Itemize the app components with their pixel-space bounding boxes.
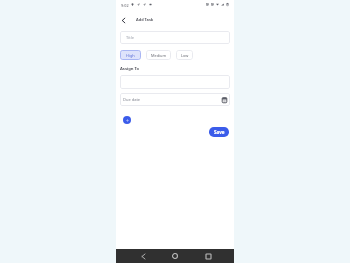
button[interactable]: Medium: [146, 50, 171, 60]
staticText: Assign To: [120, 66, 140, 72]
button[interactable]: Back: [118, 15, 128, 25]
staticText: Title: [126, 35, 134, 40]
staticText: High: [126, 53, 135, 58]
staticText: Save: [214, 129, 225, 135]
staticText: Add Task: [136, 17, 154, 22]
staticText: Low: [181, 53, 189, 58]
button[interactable]: Due date: [120, 93, 230, 106]
button[interactable]: [120, 75, 230, 89]
button[interactable]: Title: [120, 31, 230, 44]
button[interactable]: Recents: [202, 250, 214, 262]
button[interactable]: Add assignee: [123, 116, 131, 124]
button[interactable]: Low: [176, 50, 193, 60]
staticText: Due date: [123, 97, 141, 102]
button[interactable]: High: [120, 50, 141, 60]
staticText: 9:02: [121, 3, 129, 8]
button[interactable]: Save: [209, 127, 229, 137]
button[interactable]: Back: [137, 250, 149, 262]
staticText: Medium: [151, 53, 167, 58]
button[interactable]: Home: [169, 250, 181, 262]
